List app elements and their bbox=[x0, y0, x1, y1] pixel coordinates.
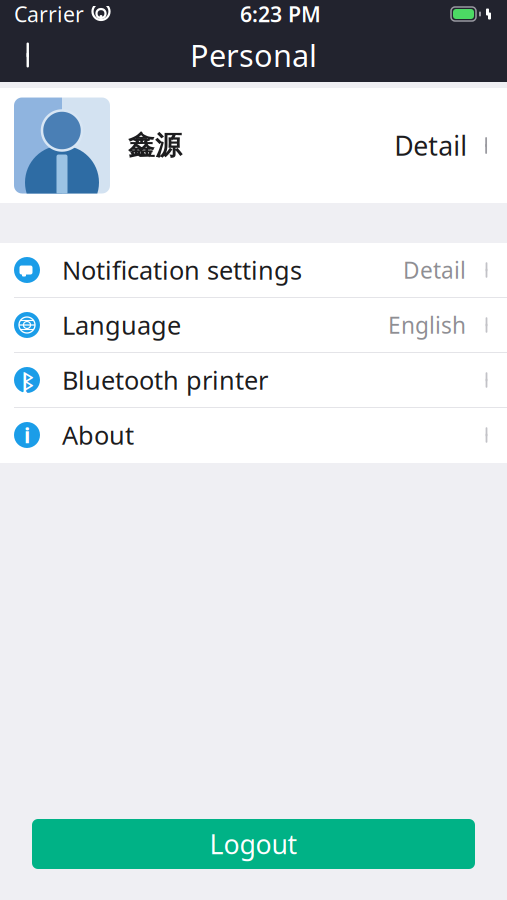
button[interactable]: 鑫源 bbox=[0, 88, 507, 203]
button[interactable]: ᛒ bbox=[0, 353, 507, 408]
staticText: Detail bbox=[394, 128, 467, 163]
staticText: Detail bbox=[403, 255, 466, 285]
staticText: 鑫源 bbox=[128, 129, 182, 162]
staticText: 6:23 PM bbox=[240, 0, 321, 28]
staticText: English bbox=[388, 310, 466, 340]
staticText: Notification settings bbox=[62, 253, 302, 287]
staticText: Personal bbox=[190, 35, 317, 75]
staticText: About bbox=[62, 418, 134, 452]
button[interactable]: Language bbox=[0, 298, 507, 353]
button[interactable]: Notification settings bbox=[0, 243, 507, 298]
button[interactable]: Back bbox=[0, 28, 56, 82]
staticText: Language bbox=[62, 308, 181, 342]
staticText: ᛒ bbox=[21, 366, 32, 394]
staticText: Carrier bbox=[14, 0, 84, 28]
staticText: Logout bbox=[209, 826, 297, 862]
button[interactable]: Logout bbox=[32, 819, 475, 869]
staticText: Bluetooth printer bbox=[62, 363, 268, 397]
staticText: i bbox=[24, 421, 30, 449]
button[interactable]: i bbox=[0, 408, 507, 463]
